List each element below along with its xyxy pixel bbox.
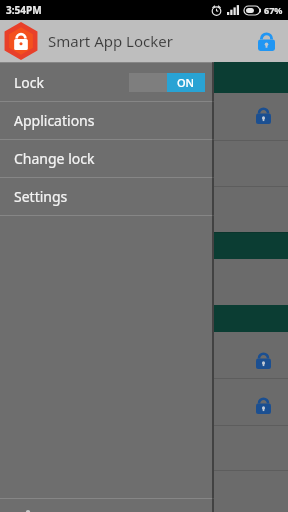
staticText: Smart App Locker bbox=[48, 31, 173, 51]
staticText: ON bbox=[177, 75, 195, 90]
staticText: Lock bbox=[14, 73, 45, 92]
button[interactable]: Settings bbox=[0, 178, 214, 215]
button[interactable]: App icon bbox=[2, 22, 40, 60]
staticText: 3:54PM bbox=[6, 3, 42, 17]
button[interactable]: SHARE bbox=[0, 499, 214, 512]
button[interactable]: Lock bbox=[0, 63, 214, 101]
button[interactable]: Lock bbox=[252, 27, 280, 55]
button[interactable]: Applications bbox=[0, 102, 214, 139]
staticText: 67% bbox=[264, 4, 283, 16]
button[interactable]: ON bbox=[129, 73, 205, 92]
staticText: Applications bbox=[14, 111, 95, 130]
staticText: Settings bbox=[14, 187, 68, 206]
button[interactable]: Change lock bbox=[0, 140, 214, 177]
staticText: Change lock bbox=[14, 149, 95, 168]
